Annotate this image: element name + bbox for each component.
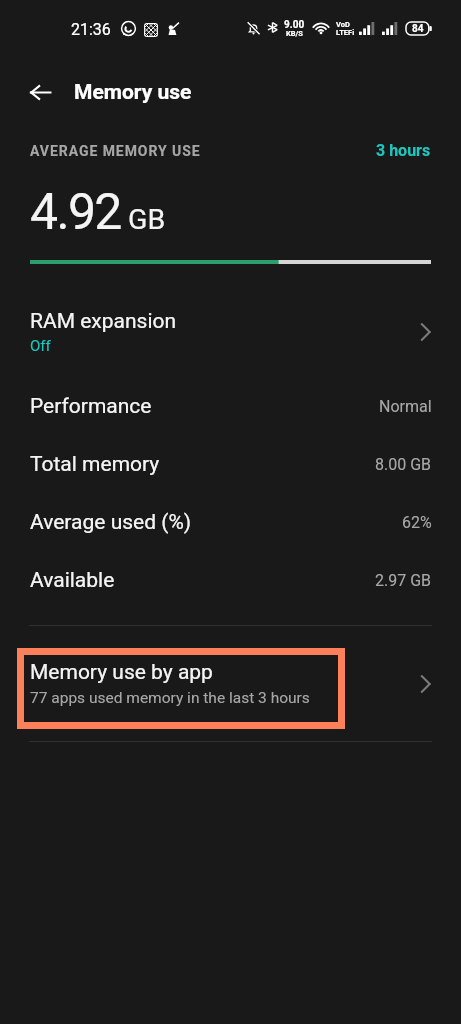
button[interactable]: RAM expansion [0,287,461,377]
staticText: 2.97 GB [375,571,432,590]
staticText: Available [30,568,115,593]
staticText: Memory use by app [30,660,213,685]
staticText: 62% [402,513,432,532]
staticText: 4.92 [30,183,121,242]
staticText: 77 apps used memory in the last 3 hours [30,689,310,707]
button[interactable]: Average used (%) [0,493,461,551]
staticText: VoD [336,20,350,29]
staticText: Average used (%) [30,510,192,535]
staticText: LTEFi [336,28,355,37]
staticText: RAM expansion [30,309,177,334]
staticText: 84 [412,23,424,35]
staticText: 9.00 [284,19,305,31]
button[interactable]: Back [18,70,62,114]
staticText: GB [128,203,166,236]
staticText: 8.00 GB [375,455,432,474]
staticText: Performance [30,394,152,419]
button[interactable]: Memory use by app [0,626,461,741]
button[interactable]: 3 hours [376,141,431,160]
button[interactable]: Performance [0,377,461,435]
staticText: AVERAGE MEMORY USE [30,143,201,159]
staticText: Total memory [30,452,160,477]
staticText: 3 hours [376,141,431,160]
staticText: Normal [379,397,432,416]
button[interactable]: Available [0,551,461,609]
staticText: KB/S [286,29,303,38]
button[interactable]: Total memory [0,435,461,493]
staticText: Memory use [74,80,192,105]
staticText: 21:36 [71,20,111,39]
staticText: Off [30,337,51,355]
